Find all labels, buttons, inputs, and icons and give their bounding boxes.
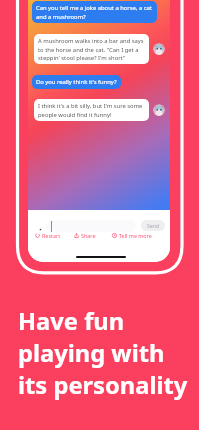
button[interactable]: [46, 220, 136, 232]
button[interactable]: Restart: [35, 232, 61, 239]
button[interactable]: A mushroom walks into a bar and says to …: [34, 34, 149, 64]
staticText: Share: [81, 232, 96, 239]
button[interactable]: Do you really think it's funny?: [32, 75, 121, 89]
staticText: Tell me more: [119, 232, 152, 239]
staticText: Have fun playing with its personality: [18, 305, 188, 401]
staticText: Can you tell me a joke about a horse, a …: [36, 4, 153, 20]
button[interactable]: Tell me more: [112, 232, 152, 239]
button[interactable]: Can you tell me a joke about a horse, a …: [32, 1, 157, 23]
button[interactable]: Send: [141, 220, 165, 231]
staticText: Restart: [42, 232, 61, 239]
staticText: Send: [147, 222, 160, 229]
button[interactable]: I think it's a bit silly, but I'm sure s…: [34, 99, 149, 121]
button[interactable]: Assistant avatar: [153, 104, 165, 116]
staticText: A mushroom walks into a bar and says to …: [38, 37, 145, 61]
button[interactable]: Share: [74, 232, 96, 239]
staticText: Do you really think it's funny?: [36, 78, 117, 86]
staticText: I think it's a bit silly, but I'm sure s…: [38, 102, 145, 118]
button[interactable]: Assistant avatar: [153, 43, 165, 55]
button[interactable]: Add attachment: [37, 226, 44, 233]
